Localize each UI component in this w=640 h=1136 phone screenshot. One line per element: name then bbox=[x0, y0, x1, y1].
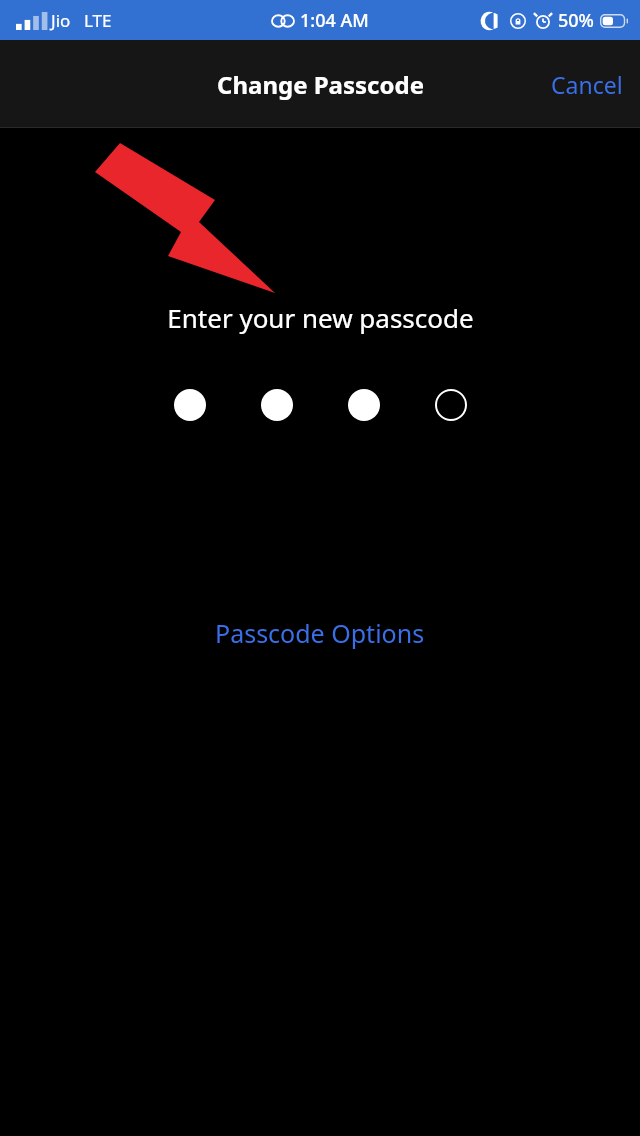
button[interactable]: Cancel bbox=[534, 53, 640, 116]
staticText: 50% bbox=[558, 8, 594, 33]
staticText: 1:04 AM bbox=[300, 8, 369, 33]
staticText: Passcode Options bbox=[215, 616, 425, 650]
staticText: Jio bbox=[51, 9, 71, 32]
button[interactable]: Passcode Options bbox=[201, 609, 439, 657]
staticText: Enter your new passcode bbox=[167, 300, 474, 335]
staticText: Change Passcode bbox=[217, 68, 424, 101]
staticText: LTE bbox=[84, 9, 112, 32]
staticText: Cancel bbox=[551, 69, 623, 100]
